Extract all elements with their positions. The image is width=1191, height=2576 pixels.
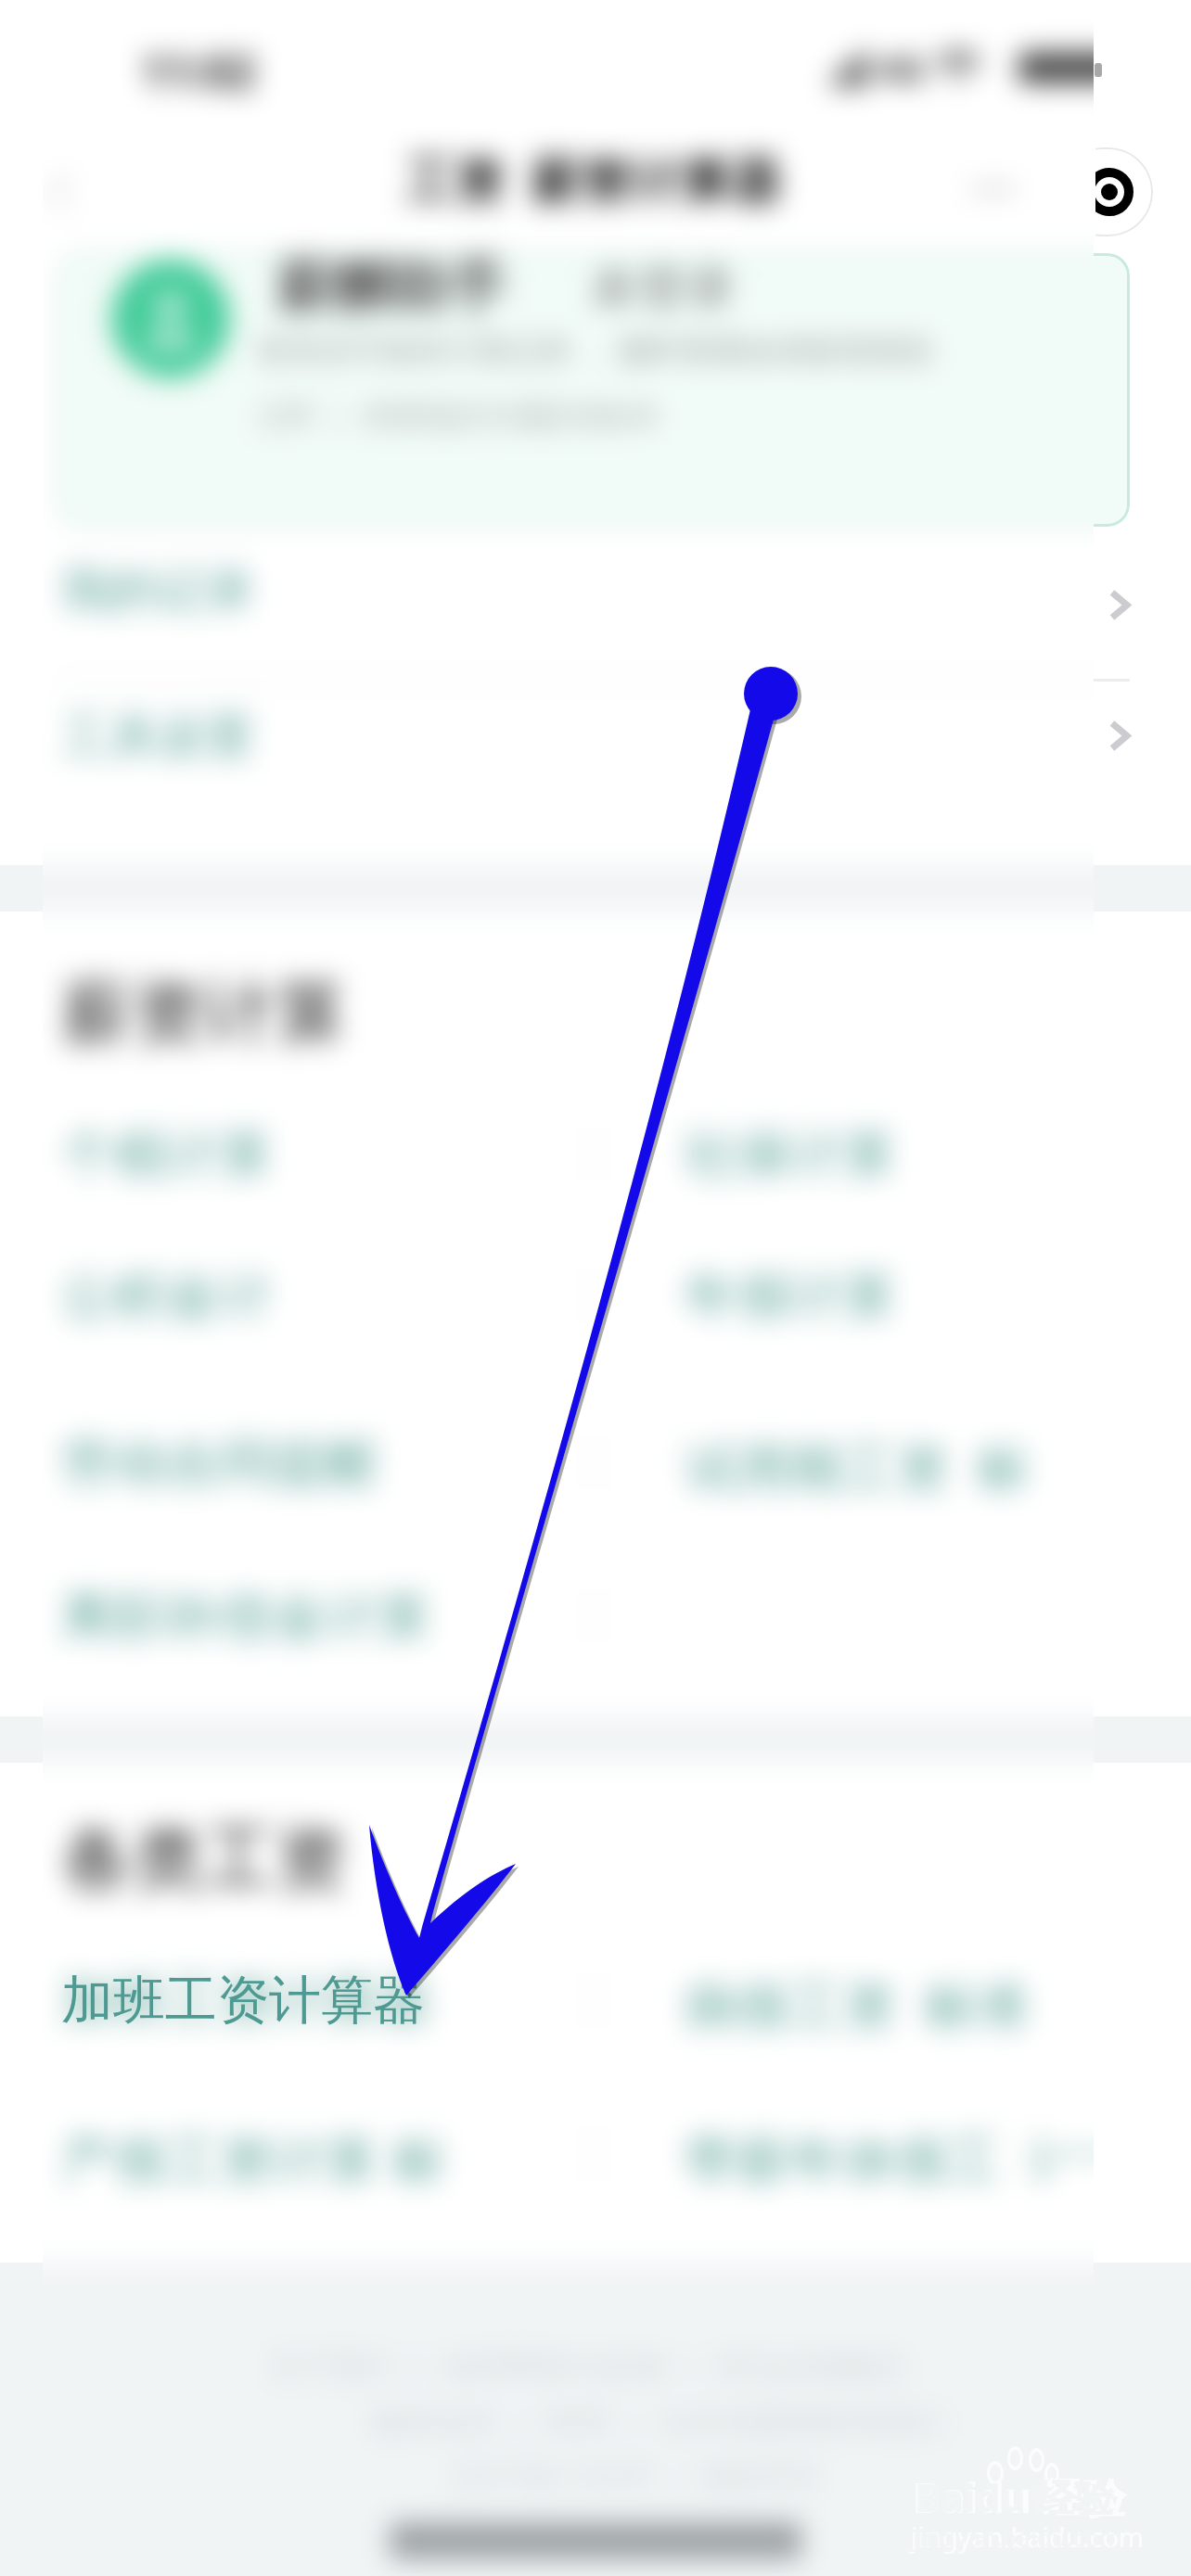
staticText: 试用期工资 标 [685,1430,1030,1502]
staticText: 离职补偿金计算 [61,1584,431,1651]
staticText: 加班工资计算器 [61,1968,425,2034]
staticText: 4G [877,43,926,93]
button[interactable]: 加班工资计算器 [61,1968,425,2034]
staticText: 年假计算 [685,1263,896,1330]
staticText: 离职补偿金计算 [61,1584,431,1651]
staticText: 社保计算 [685,1121,896,1188]
staticText: 带薪年休假工 计 [685,2122,1082,2194]
staticText: 加班工资计算器 [61,1968,431,2034]
staticText: 立即 | 查看我的专属薪资账单 [256,395,660,436]
staticText: 工具设置 [61,707,254,768]
staticText: 各类工资 [61,1815,347,1905]
staticText: 登录后可保存计算记录 ， 随时查看各类薪资报告 [256,328,935,371]
staticText: 工具设置 [61,707,254,768]
staticText: 工资 薪资计算器 [404,145,782,213]
staticText: 工资 薪资计算器 [404,145,782,213]
staticText: 劳动合同提醒 [61,1430,378,1497]
staticText: 薪酬助手 [276,250,506,323]
staticText: 薪资计算 [61,968,347,1058]
staticText: 11:02 [141,41,256,101]
staticText: 公积金计 [61,1263,273,1330]
staticText: 薪酬助手 [276,250,506,323]
staticText: 未登录 [590,258,735,319]
staticText: 各类工资 [61,1815,347,1905]
staticText: 产假工资计算 标 [61,2122,445,2194]
staticText: 年假计算 [685,1263,896,1330]
staticText: 薪资计算 [61,968,347,1058]
staticText: 4G [877,43,926,93]
staticText: 个税计算 [61,1121,273,1188]
button[interactable]: Screen recorder [1095,0,1191,371]
staticText: 产假工资计算 标 [61,2122,445,2194]
staticText: 未登录 [590,258,735,319]
staticText: 试用期工资 标 [685,1430,1030,1502]
staticText: 社保计算 [685,1121,896,1188]
staticText: 加班工资计算器 [61,1968,431,2034]
staticText: 带薪年休假工 计 [685,2122,1082,2194]
staticText: 登录后可保存计算记录 ， 随时查看各类薪资报告 [256,328,935,371]
staticText: 立即 | 查看我的专属薪资账单 [256,395,660,436]
staticText: 个税计算 [61,1121,273,1188]
staticText: 病假工资 标准 [685,1968,1030,2040]
staticText: 劳动合同提醒 [61,1430,378,1497]
staticText: 病假工资 标准 [685,1968,1030,2040]
staticText: 我的记录 [61,560,254,621]
staticText: 我的记录 [61,560,254,621]
staticText: 11:02 [141,41,256,101]
staticText: 公积金计 [61,1263,273,1330]
